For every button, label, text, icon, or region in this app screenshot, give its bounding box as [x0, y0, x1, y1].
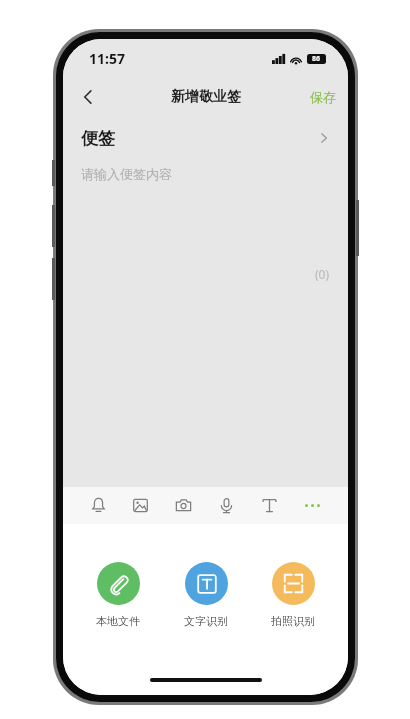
staticText: 新增敬业签: [171, 88, 241, 106]
staticText: 拍照识别: [271, 614, 315, 628]
staticText: 11:57: [89, 49, 125, 68]
button[interactable]: Camera: [162, 487, 205, 524]
button[interactable]: Reminder: [77, 487, 119, 524]
button[interactable]: More: [291, 487, 334, 524]
staticText: 便签: [81, 128, 115, 149]
staticText: 请输入便签内容: [81, 166, 172, 182]
staticText: 86: [312, 54, 321, 64]
button[interactable]: Text format: [248, 487, 291, 524]
staticText: 本地文件: [96, 614, 140, 628]
staticText: 文字识别: [184, 614, 228, 628]
button[interactable]: Image: [119, 487, 162, 524]
button[interactable]: 便签: [63, 116, 348, 160]
button[interactable]: 文字识别: [174, 560, 238, 630]
staticText: 保存: [310, 89, 336, 105]
staticText: (0): [315, 266, 330, 282]
button[interactable]: 本地文件: [86, 560, 150, 630]
button[interactable]: Voice: [205, 487, 248, 524]
button[interactable]: Back: [71, 80, 105, 114]
button[interactable]: 保存: [298, 83, 348, 111]
button[interactable]: 拍照识别: [261, 560, 325, 630]
